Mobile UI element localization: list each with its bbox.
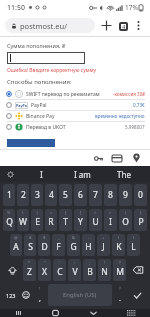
button[interactable]: \ xyxy=(17,209,29,231)
staticText: % xyxy=(7,210,11,215)
button[interactable]: Emoji xyxy=(19,284,33,306)
button[interactable]: Hide keyboard xyxy=(74,309,112,317)
button[interactable]: SWIFT перевод по реквизитам xyxy=(0,89,150,99)
button[interactable]: ) xyxy=(127,234,140,256)
staticText: B xyxy=(87,266,93,278)
button[interactable]: English (US) xyxy=(48,284,112,306)
button[interactable]: More options xyxy=(132,19,145,32)
staticText: -комиссия 30₴ xyxy=(113,91,145,97)
button[interactable] xyxy=(7,52,85,64)
staticText: Ошибка! Введите корректную сумму xyxy=(7,67,97,74)
button[interactable]: = xyxy=(45,209,57,231)
button[interactable]: I xyxy=(20,166,62,182)
staticText: 4 xyxy=(49,189,54,201)
button[interactable]: 0 xyxy=(134,184,147,206)
staticText: D xyxy=(41,241,48,253)
button[interactable]: + xyxy=(97,234,110,256)
button[interactable]: < xyxy=(89,209,102,231)
staticText: G xyxy=(70,241,77,253)
button[interactable]: [ xyxy=(59,209,72,231)
button[interactable]: } xyxy=(134,209,147,231)
button[interactable]: Shift xyxy=(2,259,22,281)
button[interactable]: " xyxy=(38,259,51,281)
staticText: postmost.eu/personal xyxy=(20,21,89,31)
button[interactable]: Перевод в UKOT xyxy=(0,122,150,132)
button[interactable]: 6 xyxy=(74,184,87,206)
button[interactable]: Backspace xyxy=(127,259,148,281)
staticText: 7 xyxy=(93,189,98,201)
button[interactable]: # xyxy=(24,234,36,256)
button[interactable]: Switch keyboard xyxy=(112,309,150,317)
button[interactable]: Settings xyxy=(0,166,20,182)
button[interactable]: Payment methods xyxy=(111,152,123,164)
button[interactable]: Addresses xyxy=(130,152,142,164)
button[interactable]: { xyxy=(119,209,132,231)
staticText: English (US) xyxy=(63,291,97,299)
button[interactable]: Recents xyxy=(0,309,37,317)
button[interactable]: New tab xyxy=(100,19,113,32)
staticText: ] xyxy=(80,210,82,215)
button[interactable]: ' xyxy=(53,259,66,281)
staticText: \ xyxy=(22,210,24,215)
staticText: [ xyxy=(65,210,67,215)
staticText: > xyxy=(109,210,112,215)
button[interactable]: Passwords xyxy=(92,152,104,164)
staticText: + xyxy=(102,235,105,240)
staticText: ( xyxy=(118,235,120,240)
button[interactable]: 5 xyxy=(59,184,72,206)
button[interactable]: ? xyxy=(113,259,126,281)
button[interactable]: PayPal xyxy=(0,100,150,110)
button[interactable]: - xyxy=(82,234,95,256)
button[interactable]: 8 xyxy=(104,184,117,206)
staticText: @ xyxy=(14,235,18,240)
button[interactable]: 7 xyxy=(89,184,102,206)
button[interactable]: _ xyxy=(52,234,65,256)
button[interactable]: $ xyxy=(38,234,50,256)
staticText: ' xyxy=(59,260,60,265)
button[interactable]: | xyxy=(31,209,43,231)
button[interactable]: ! xyxy=(98,259,111,281)
staticText: U xyxy=(92,216,99,228)
button[interactable]: Enter xyxy=(127,284,148,306)
staticText: F xyxy=(56,241,61,253)
button[interactable]: : xyxy=(68,259,81,281)
staticText: 0.73€ xyxy=(133,102,145,108)
button[interactable]: I am xyxy=(62,166,103,182)
staticText: 123 xyxy=(6,292,16,299)
staticText: 3 xyxy=(35,189,40,201)
staticText: M xyxy=(116,266,124,278)
button[interactable]: 4 xyxy=(45,184,57,206)
button[interactable]: & xyxy=(67,234,80,256)
staticText: 4 xyxy=(122,23,126,31)
staticText: C xyxy=(57,266,63,278)
button[interactable]: 1 xyxy=(3,184,15,206)
staticText: Y xyxy=(78,216,83,228)
staticText: { xyxy=(125,210,127,215)
button[interactable]: ! xyxy=(33,284,47,306)
button[interactable]: 2 xyxy=(17,184,29,206)
button[interactable]: > xyxy=(104,209,117,231)
button[interactable]: Tabs xyxy=(117,20,129,32)
staticText: X xyxy=(42,266,47,278)
button[interactable]: ; xyxy=(83,259,96,281)
button[interactable]: 3 xyxy=(31,184,43,206)
button[interactable]: * xyxy=(23,259,36,281)
button[interactable]: 123 xyxy=(2,284,19,306)
button[interactable]: Binance Pay xyxy=(0,111,150,121)
button[interactable]: Home xyxy=(37,309,74,317)
staticText: I am xyxy=(74,169,91,180)
staticText: - xyxy=(88,235,90,240)
staticText: A xyxy=(13,241,19,253)
button[interactable]: % xyxy=(3,209,15,231)
button[interactable]: The xyxy=(103,166,144,182)
button[interactable]: ] xyxy=(74,209,87,231)
button[interactable]: ( xyxy=(112,234,125,256)
staticText: J xyxy=(102,241,105,253)
button[interactable]: 9 xyxy=(119,184,132,206)
button[interactable]: ? xyxy=(113,284,127,306)
button[interactable]: @ xyxy=(10,234,22,256)
staticText: P xyxy=(138,216,144,228)
button[interactable]: postmost.eu/personal xyxy=(5,18,95,33)
staticText: Перевод в UKOT xyxy=(26,124,66,131)
